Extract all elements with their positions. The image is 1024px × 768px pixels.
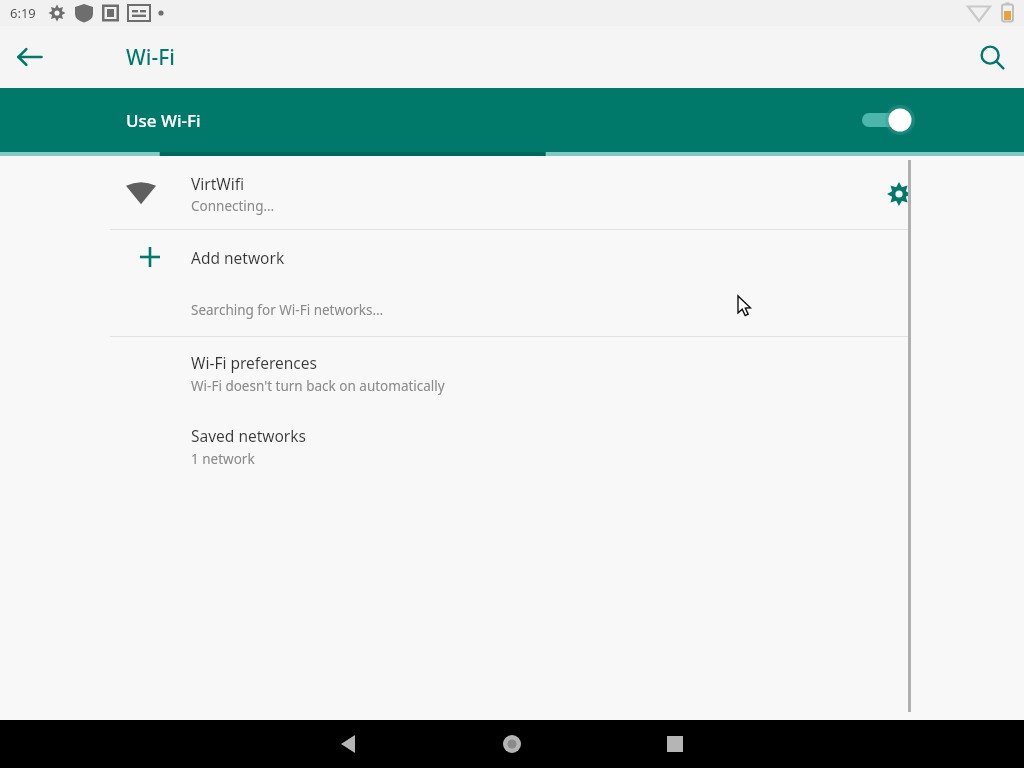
staticText: Use Wi-Fi	[126, 109, 201, 132]
staticText: Searching for Wi-Fi networks…	[191, 301, 384, 319]
staticText: Wi-Fi doesn't turn back on automatically	[191, 377, 445, 395]
button[interactable]: Back	[6, 33, 54, 81]
button[interactable]: VirtWifi	[0, 158, 1024, 229]
button[interactable]: Add network	[0, 230, 1024, 284]
button[interactable]: Network settings	[876, 171, 922, 217]
staticText: 6:19	[10, 4, 36, 22]
staticText: Add network	[191, 247, 285, 268]
button[interactable]: Back	[325, 720, 373, 768]
button[interactable]: Home	[488, 720, 536, 768]
button[interactable]: Recent apps	[651, 720, 699, 768]
button[interactable]: Use Wi-Fi	[0, 88, 1024, 152]
staticText: Wi-Fi preferences	[191, 352, 317, 373]
button[interactable]: Saved networks	[0, 410, 1024, 483]
button[interactable]: Wi-Fi preferences	[0, 337, 1024, 410]
staticText: VirtWifi	[191, 173, 245, 194]
button[interactable]: Search	[968, 33, 1016, 81]
staticText: Wi-Fi	[126, 43, 175, 72]
staticText: 1 network	[191, 450, 255, 468]
staticText: Connecting…	[191, 197, 275, 215]
staticText: Saved networks	[191, 425, 306, 446]
